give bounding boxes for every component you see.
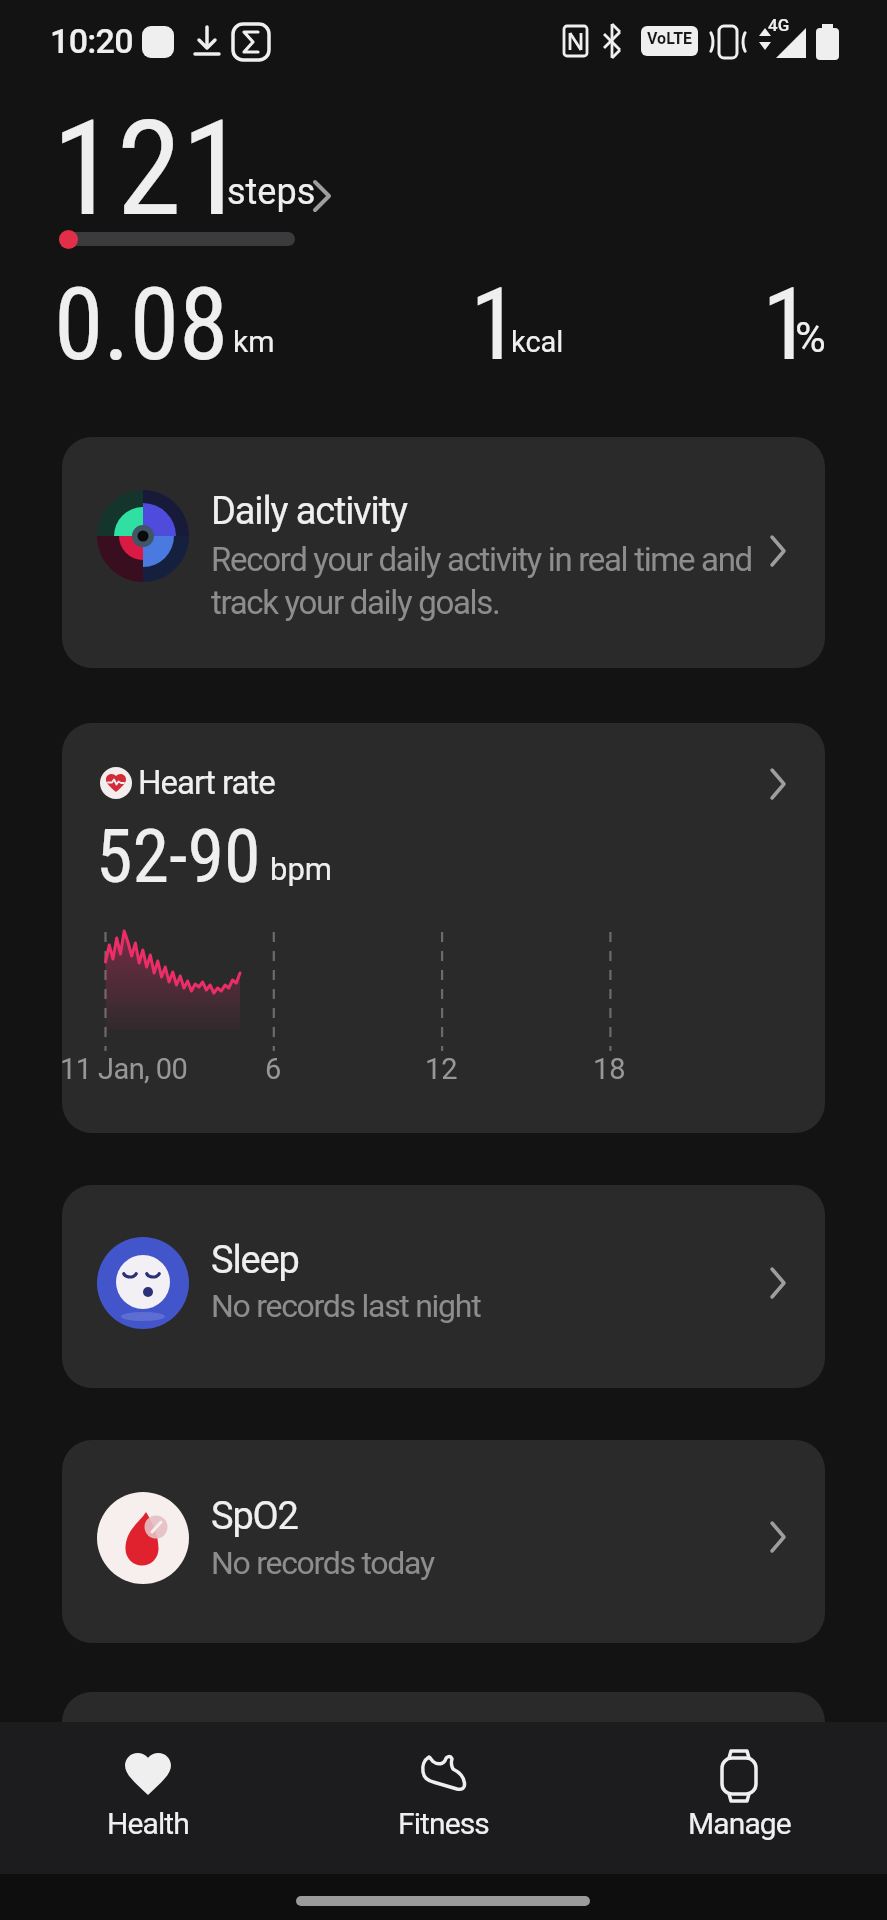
staticText: Record your daily activity in real time … [211,540,752,579]
button[interactable]: Manage [591,1722,887,1874]
button[interactable] [62,1185,825,1388]
staticText: 121 [52,92,247,246]
staticText: 18 [593,1052,626,1086]
button[interactable] [62,1440,825,1643]
staticText: 1 [762,266,812,383]
button[interactable] [62,1692,825,1772]
staticText: 12 [425,1052,458,1086]
staticText: steps [227,171,316,213]
staticText: 52-90 [96,813,261,900]
button[interactable] [62,723,825,1133]
button[interactable] [62,437,825,668]
staticText: Health [107,1806,189,1841]
button[interactable]: Health [0,1722,295,1874]
staticText: 0.08 [54,266,229,383]
button[interactable] [44,80,344,250]
staticText: No records last night [211,1287,481,1325]
staticText: Heart rate [138,763,275,802]
staticText: kcal [511,325,564,359]
staticText: Daily activity [211,489,407,534]
staticText: Fitness [398,1806,489,1841]
staticText: % [795,313,826,362]
staticText: 4G [768,15,790,35]
staticText: 11 Jan, 00 [60,1052,188,1086]
staticText: Manage [688,1806,791,1841]
staticText: No records today [211,1544,434,1582]
staticText: bpm [270,851,332,887]
staticText: km [233,324,275,359]
staticText: 6 [265,1052,282,1086]
staticText: track your daily goals. [211,583,500,622]
button[interactable]: Fitness [295,1722,591,1874]
staticText: SpO2 [211,1494,298,1539]
staticText: 10:20 [50,21,133,61]
staticText: 1 [470,266,520,383]
staticText: Sleep [211,1238,299,1283]
staticText: VoLTE [647,29,693,48]
